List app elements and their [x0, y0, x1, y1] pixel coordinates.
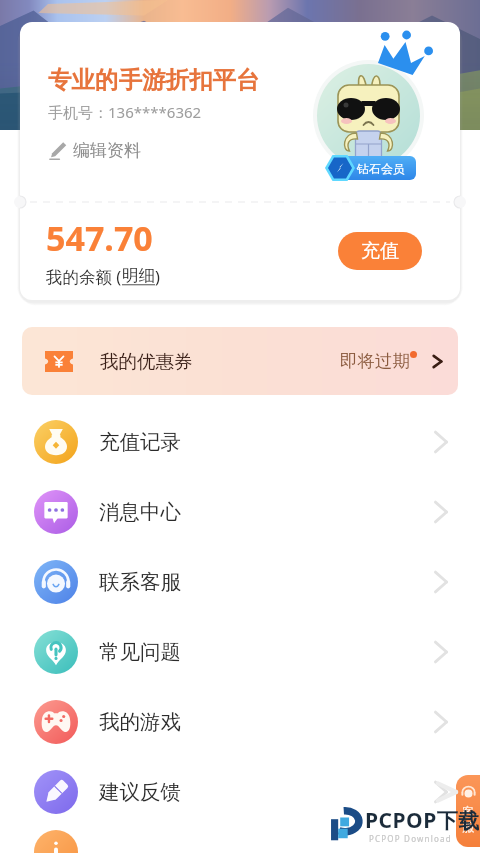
staticText: 我的优惠券 [100, 350, 193, 373]
button[interactable]: 联系客服 [0, 547, 480, 617]
staticText: ) [155, 265, 160, 287]
staticText: 编辑资料 [73, 140, 141, 161]
staticText: 充值 [361, 239, 399, 263]
button[interactable]: 消息中心 [0, 477, 480, 547]
button[interactable]: 客服 [456, 775, 480, 847]
staticText: 常见问题 [99, 639, 181, 665]
staticText: 消息中心 [99, 499, 181, 525]
button[interactable]: 充值记录 [0, 407, 480, 477]
staticText: 我的游戏 [99, 709, 181, 735]
staticText: 手机号：136****6362 [48, 102, 202, 122]
staticText: 建议反馈 [99, 779, 181, 805]
staticText: 专业的手游折扣平台 [48, 65, 260, 95]
button[interactable]: 我的游戏 [0, 687, 480, 757]
staticText: 我的余额 ( [46, 265, 122, 288]
button[interactable]: 我的优惠券 [22, 327, 458, 395]
staticText: PCPOP Download [369, 833, 452, 844]
staticText: PCPOP下载 [365, 806, 480, 835]
button[interactable]: 编辑资料 [48, 138, 141, 163]
staticText: 547.70 [46, 215, 153, 261]
button[interactable]: 常见问题 [0, 617, 480, 687]
button[interactable]: 建议反馈 [0, 757, 480, 827]
button[interactable] [0, 827, 480, 853]
staticText: 钻石会员 [357, 161, 405, 176]
staticText: 充值记录 [99, 429, 181, 455]
staticText: 明细 [122, 265, 155, 286]
button[interactable]: 充值 [338, 232, 422, 270]
staticText: 服 [462, 819, 474, 834]
staticText: 客 [462, 804, 474, 819]
staticText: 联系客服 [99, 569, 181, 595]
staticText: 即将过期 [340, 350, 410, 372]
